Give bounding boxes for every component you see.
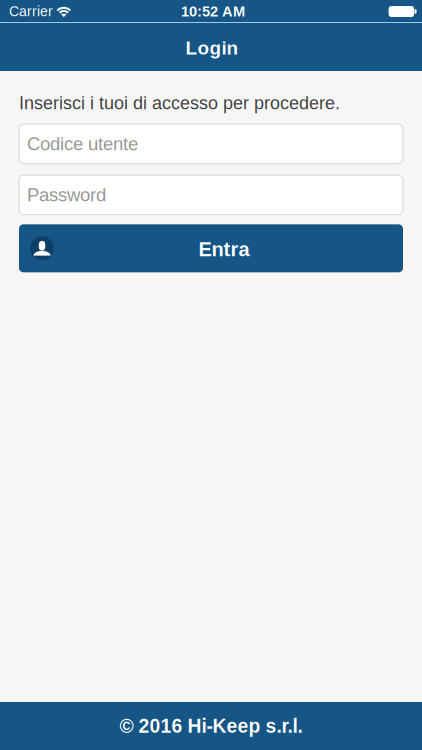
button[interactable]: Password xyxy=(19,175,403,215)
button[interactable]: Codice utente xyxy=(19,124,403,164)
button[interactable]: Entra xyxy=(19,224,403,272)
staticText: Entra xyxy=(198,238,249,260)
staticText: 10:52 AM xyxy=(181,3,245,20)
staticText: Inserisci i tuoi di accesso per proceder… xyxy=(19,93,340,113)
staticText: Codice utente xyxy=(27,134,138,154)
staticText: Carrier xyxy=(9,4,53,19)
staticText: Login xyxy=(185,37,238,59)
staticText: Password xyxy=(27,185,106,205)
staticText: © 2016 Hi-Keep s.r.l. xyxy=(119,715,302,737)
